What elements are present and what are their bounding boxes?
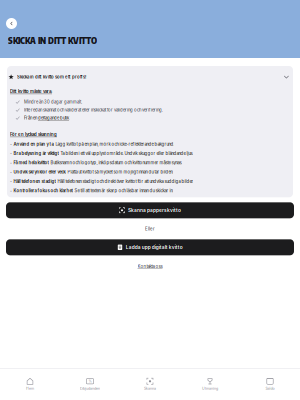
button[interactable]: Skanna xyxy=(120,368,180,400)
staticText: För en lyckad skanning xyxy=(10,132,57,137)
staticText: Kontakta oss xyxy=(137,264,162,269)
staticText: Bra belysning är viktigt. Ta bilden i et… xyxy=(13,151,193,156)
staticText: Inte redan skannat och validerat eller i… xyxy=(24,107,163,113)
staticText: Skicka in ditt kvitto som ett proffs! xyxy=(17,74,86,80)
staticText: - xyxy=(10,179,12,184)
staticText: - xyxy=(10,151,12,156)
staticText: Skanna xyxy=(144,386,156,391)
staticText: Ladda upp digitalt kvitto xyxy=(126,244,183,250)
button[interactable]: Tillbaka xyxy=(6,18,17,29)
staticText: Hem xyxy=(26,386,34,391)
staticText: Skanna papperskvitto xyxy=(128,207,181,213)
staticText: SKICKA IN DITT KVITTO xyxy=(8,35,97,46)
staticText: Från en deltagande butik xyxy=(24,115,69,120)
button[interactable]: Saldo xyxy=(240,368,300,400)
staticText: Ditt kvitto måste vara: xyxy=(10,89,52,94)
button[interactable]: Skicka in ditt kvitto som ett proffs! xyxy=(7,66,293,88)
button[interactable]: Ladda upp digitalt kvitto xyxy=(6,239,294,255)
staticText: % xyxy=(88,379,91,383)
staticText: - xyxy=(10,160,12,165)
staticText: Saldo xyxy=(265,386,274,391)
staticText: Mindre än 30 dagar gammalt. xyxy=(24,99,82,105)
staticText: Använd en plan yta. Lägg kvittot på en p… xyxy=(13,142,174,147)
button[interactable]: Utmaning xyxy=(180,368,240,400)
staticText: - xyxy=(10,169,12,175)
staticText: Eller xyxy=(145,226,155,231)
staticText: Få med hela kvittot. Butiksnamn och logo… xyxy=(13,160,182,165)
staticText: - xyxy=(10,142,12,147)
staticText: Undvik skrynklor eller veck. Platta ut k… xyxy=(13,170,173,175)
staticText: Håll telefonen stadigt. Håll telefonen s… xyxy=(13,179,193,184)
button[interactable]: Skanna papperskvitto xyxy=(6,202,294,218)
staticText: Utmaning xyxy=(202,386,218,391)
staticText: - xyxy=(10,188,12,193)
button[interactable]: Hem xyxy=(0,368,60,400)
staticText: Kontrollera fokus och klarhet. Se till a… xyxy=(13,188,173,193)
button[interactable]: % xyxy=(60,368,120,400)
button[interactable]: Kontakta oss xyxy=(137,255,162,277)
staticText: Erbjudanden xyxy=(80,386,100,391)
